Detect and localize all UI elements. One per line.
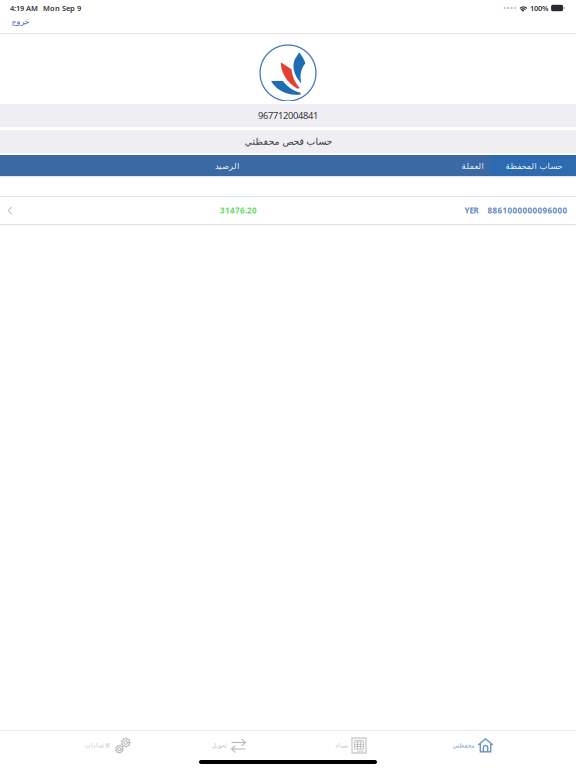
staticText: تحويل	[211, 742, 227, 749]
staticText: 31476.20	[220, 205, 257, 216]
staticText: حساب فحص محفظتي	[244, 136, 332, 147]
staticText: 4:19 AM	[10, 3, 38, 13]
staticText: Mon Sep 9	[43, 3, 81, 13]
staticText: YER	[464, 205, 478, 216]
staticText: خروج	[11, 17, 29, 26]
button[interactable]: محفظتي	[412, 731, 534, 760]
button[interactable]: تحويل	[168, 731, 290, 760]
button[interactable]: 31476.20	[0, 197, 576, 224]
staticText: 100%	[530, 3, 549, 13]
staticText: 8861000000096000	[487, 205, 567, 216]
staticText: الرصيد	[214, 161, 238, 171]
staticText: سداد	[334, 742, 347, 749]
button[interactable]: سداد	[290, 731, 412, 760]
staticText: الاعدادات	[84, 742, 109, 749]
staticText: العملة	[461, 161, 483, 171]
staticText: محفظتي	[452, 742, 474, 749]
button[interactable]: الاعدادات	[46, 731, 168, 760]
staticText: 967712004841	[258, 109, 318, 122]
staticText: حساب المحفظة	[505, 161, 562, 171]
button[interactable]: خروج	[0, 16, 39, 34]
